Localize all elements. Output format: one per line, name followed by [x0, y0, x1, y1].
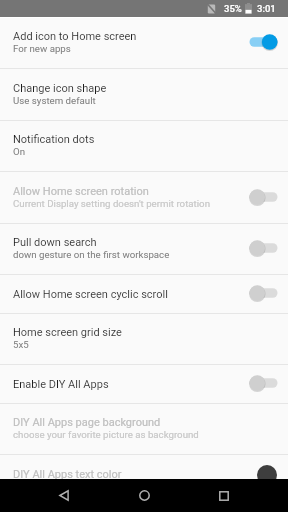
button[interactable]: Recent apps [184, 479, 264, 512]
button[interactable]: Back [24, 479, 104, 512]
staticText: 3:01 [257, 3, 276, 14]
staticText: Allow Home screen rotation [13, 185, 149, 198]
staticText: Current Display setting doesn't permit r… [13, 198, 210, 209]
button[interactable]: Enable DIY All Apps [0, 365, 288, 403]
button[interactable]: Add icon to Home screen [0, 18, 288, 68]
staticText: Home screen grid size [13, 326, 122, 339]
staticText: For new apps [13, 43, 71, 54]
staticText: DIY All Apps text color [13, 468, 122, 481]
button[interactable]: Pull down search [0, 224, 288, 274]
staticText: On [13, 146, 26, 157]
staticText: choose your favorite picture as backgrou… [13, 429, 199, 440]
button[interactable]: Allow Home screen cyclic scroll [0, 275, 288, 313]
button[interactable]: DIY All Apps page background [0, 404, 288, 454]
button[interactable]: Allow Home screen rotation [0, 172, 288, 223]
staticText: Notification dots [13, 133, 95, 146]
staticText: 5x5 [13, 339, 29, 350]
button[interactable]: Home screen grid size [0, 314, 288, 364]
staticText: Add icon to Home screen [13, 30, 137, 43]
other: Battery 35 percent [245, 3, 252, 14]
staticText: down gesture on the first workspace [13, 249, 170, 260]
staticText: Enable DIY All Apps [13, 378, 109, 391]
button[interactable]: DIY All Apps text color [0, 455, 288, 494]
staticText: Change icon shape [13, 82, 107, 95]
button[interactable]: Home [104, 479, 184, 512]
other: No SIM card [207, 3, 217, 15]
staticText: Allow Home screen cyclic scroll [13, 288, 168, 301]
staticText: 35% [224, 3, 242, 14]
staticText: Pull down search [13, 236, 97, 249]
staticText: DIY All Apps page background [13, 416, 161, 429]
button[interactable]: Notification dots [0, 121, 288, 171]
staticText: Use system default [13, 95, 96, 106]
button[interactable]: Change icon shape [0, 69, 288, 120]
